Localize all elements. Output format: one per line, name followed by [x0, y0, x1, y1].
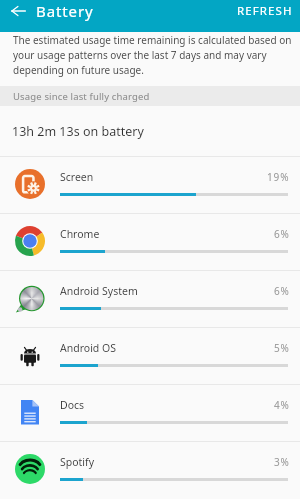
- staticText: Spotify: [60, 455, 95, 469]
- staticText: 3%: [274, 455, 290, 469]
- staticText: 13h 2m 13s on battery: [12, 123, 144, 140]
- staticText: 4%: [274, 398, 290, 412]
- staticText: REFRESH: [237, 3, 293, 19]
- button[interactable]: Screen: [0, 157, 300, 213]
- button[interactable]: Spotify: [0, 442, 300, 498]
- staticText: 5%: [274, 341, 290, 355]
- staticText: Battery: [36, 1, 94, 21]
- button[interactable]: Android OS: [0, 328, 300, 384]
- button[interactable]: Chrome: [0, 214, 300, 270]
- staticText: Screen: [60, 170, 94, 184]
- staticText: depending on future usage.: [13, 63, 144, 78]
- staticText: Usage since last fully charged: [13, 90, 150, 103]
- button[interactable]: Back: [0, 0, 36, 22]
- button[interactable]: REFRESH: [228, 0, 300, 22]
- button[interactable]: Android System: [0, 271, 300, 327]
- staticText: Android OS: [60, 341, 116, 355]
- staticText: Docs: [60, 398, 85, 412]
- staticText: Android System: [60, 284, 138, 298]
- staticText: your usage patterns over the last 7 days…: [13, 48, 267, 63]
- staticText: The estimated usage time remaining is ca…: [13, 33, 292, 48]
- staticText: 6%: [274, 227, 290, 241]
- staticText: 19%: [267, 170, 290, 184]
- staticText: 6%: [274, 284, 290, 298]
- staticText: Chrome: [60, 227, 100, 241]
- button[interactable]: Docs: [0, 385, 300, 441]
